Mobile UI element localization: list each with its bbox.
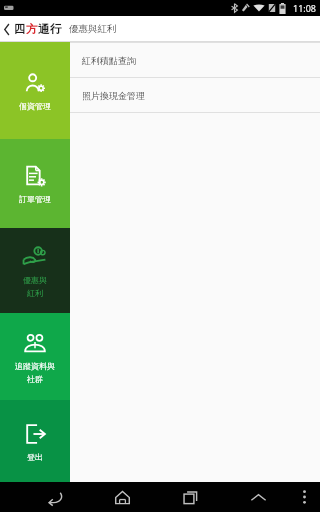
button[interactable]: 個資管理 xyxy=(0,42,70,139)
button[interactable]: More options xyxy=(294,482,314,512)
staticText: 方 xyxy=(26,22,38,36)
staticText: 紅利 xyxy=(27,288,43,298)
staticText: 行 xyxy=(50,22,62,36)
button[interactable]: Recent apps xyxy=(175,482,205,512)
button[interactable]: 追蹤資料與 xyxy=(0,313,70,400)
button[interactable]: 紅利積點查詢 xyxy=(70,42,320,77)
button[interactable]: Home xyxy=(107,482,137,512)
staticText: 通 xyxy=(38,22,50,36)
staticText: 照片換現金管理 xyxy=(82,90,145,101)
button[interactable]: Expand xyxy=(243,482,273,512)
button[interactable]: Back xyxy=(40,482,70,512)
staticText: 社群 xyxy=(27,374,43,384)
staticText: 優惠與紅利 xyxy=(69,23,117,35)
staticText: 追蹤資料與 xyxy=(15,361,55,371)
button[interactable]: 照片換現金管理 xyxy=(70,77,320,112)
staticText: 四 xyxy=(14,22,26,36)
staticText: 登出 xyxy=(27,452,43,462)
staticText: 訂單管理 xyxy=(19,194,51,204)
button[interactable]: Back xyxy=(0,16,14,42)
button[interactable]: 訂單管理 xyxy=(0,139,70,228)
button[interactable]: 登出 xyxy=(0,400,70,482)
button[interactable]: 優惠與 xyxy=(0,228,70,313)
staticText: 個資管理 xyxy=(19,101,51,111)
staticText: 紅利積點查詢 xyxy=(82,55,136,66)
staticText: 優惠與 xyxy=(23,275,47,285)
staticText: 11:08 xyxy=(293,2,317,14)
